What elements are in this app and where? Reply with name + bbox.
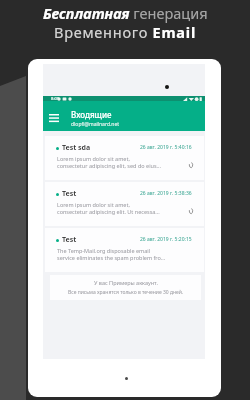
staticText: 26 авг. 2019 г. 5:20:15 [140,236,192,243]
staticText: The Temp-Mail.org disposable email [57,247,151,254]
staticText: 26 авг. 2019 г. 5:40:16 [140,144,192,151]
button[interactable]: Test [45,182,204,226]
button[interactable]: Test sda [45,136,204,180]
staticText: Входящие [71,109,112,120]
staticText: 8:05 [51,96,60,101]
staticText: consectetur adipiscing elit. Ut necessa.… [57,208,160,215]
button[interactable]: Test [45,228,204,272]
staticText: У вас Примеры аккаунт. [94,279,158,286]
staticText: consectetur adipiscing elit, sed do eius… [57,162,162,169]
staticText: Все письма хранятся только в течение 30 … [68,289,184,296]
staticText: Test sda [62,143,91,153]
staticText: Test [62,189,77,199]
staticText: 26 авг. 2019 г. 5:38:36 [140,190,192,197]
staticText: Test [62,235,77,245]
staticText: Бесплатная генерация [43,3,208,23]
button[interactable]: Open navigation menu [45,109,63,127]
staticText: dlopfi@mailnard.net [71,121,120,128]
staticText: service eliminates the spam problem fro.… [57,254,166,261]
staticText: Временного Email [54,22,196,42]
staticText: Lorem ipsum dolor sit amet, [57,201,130,208]
staticText: Lorem ipsum dolor sit amet, [57,155,130,162]
